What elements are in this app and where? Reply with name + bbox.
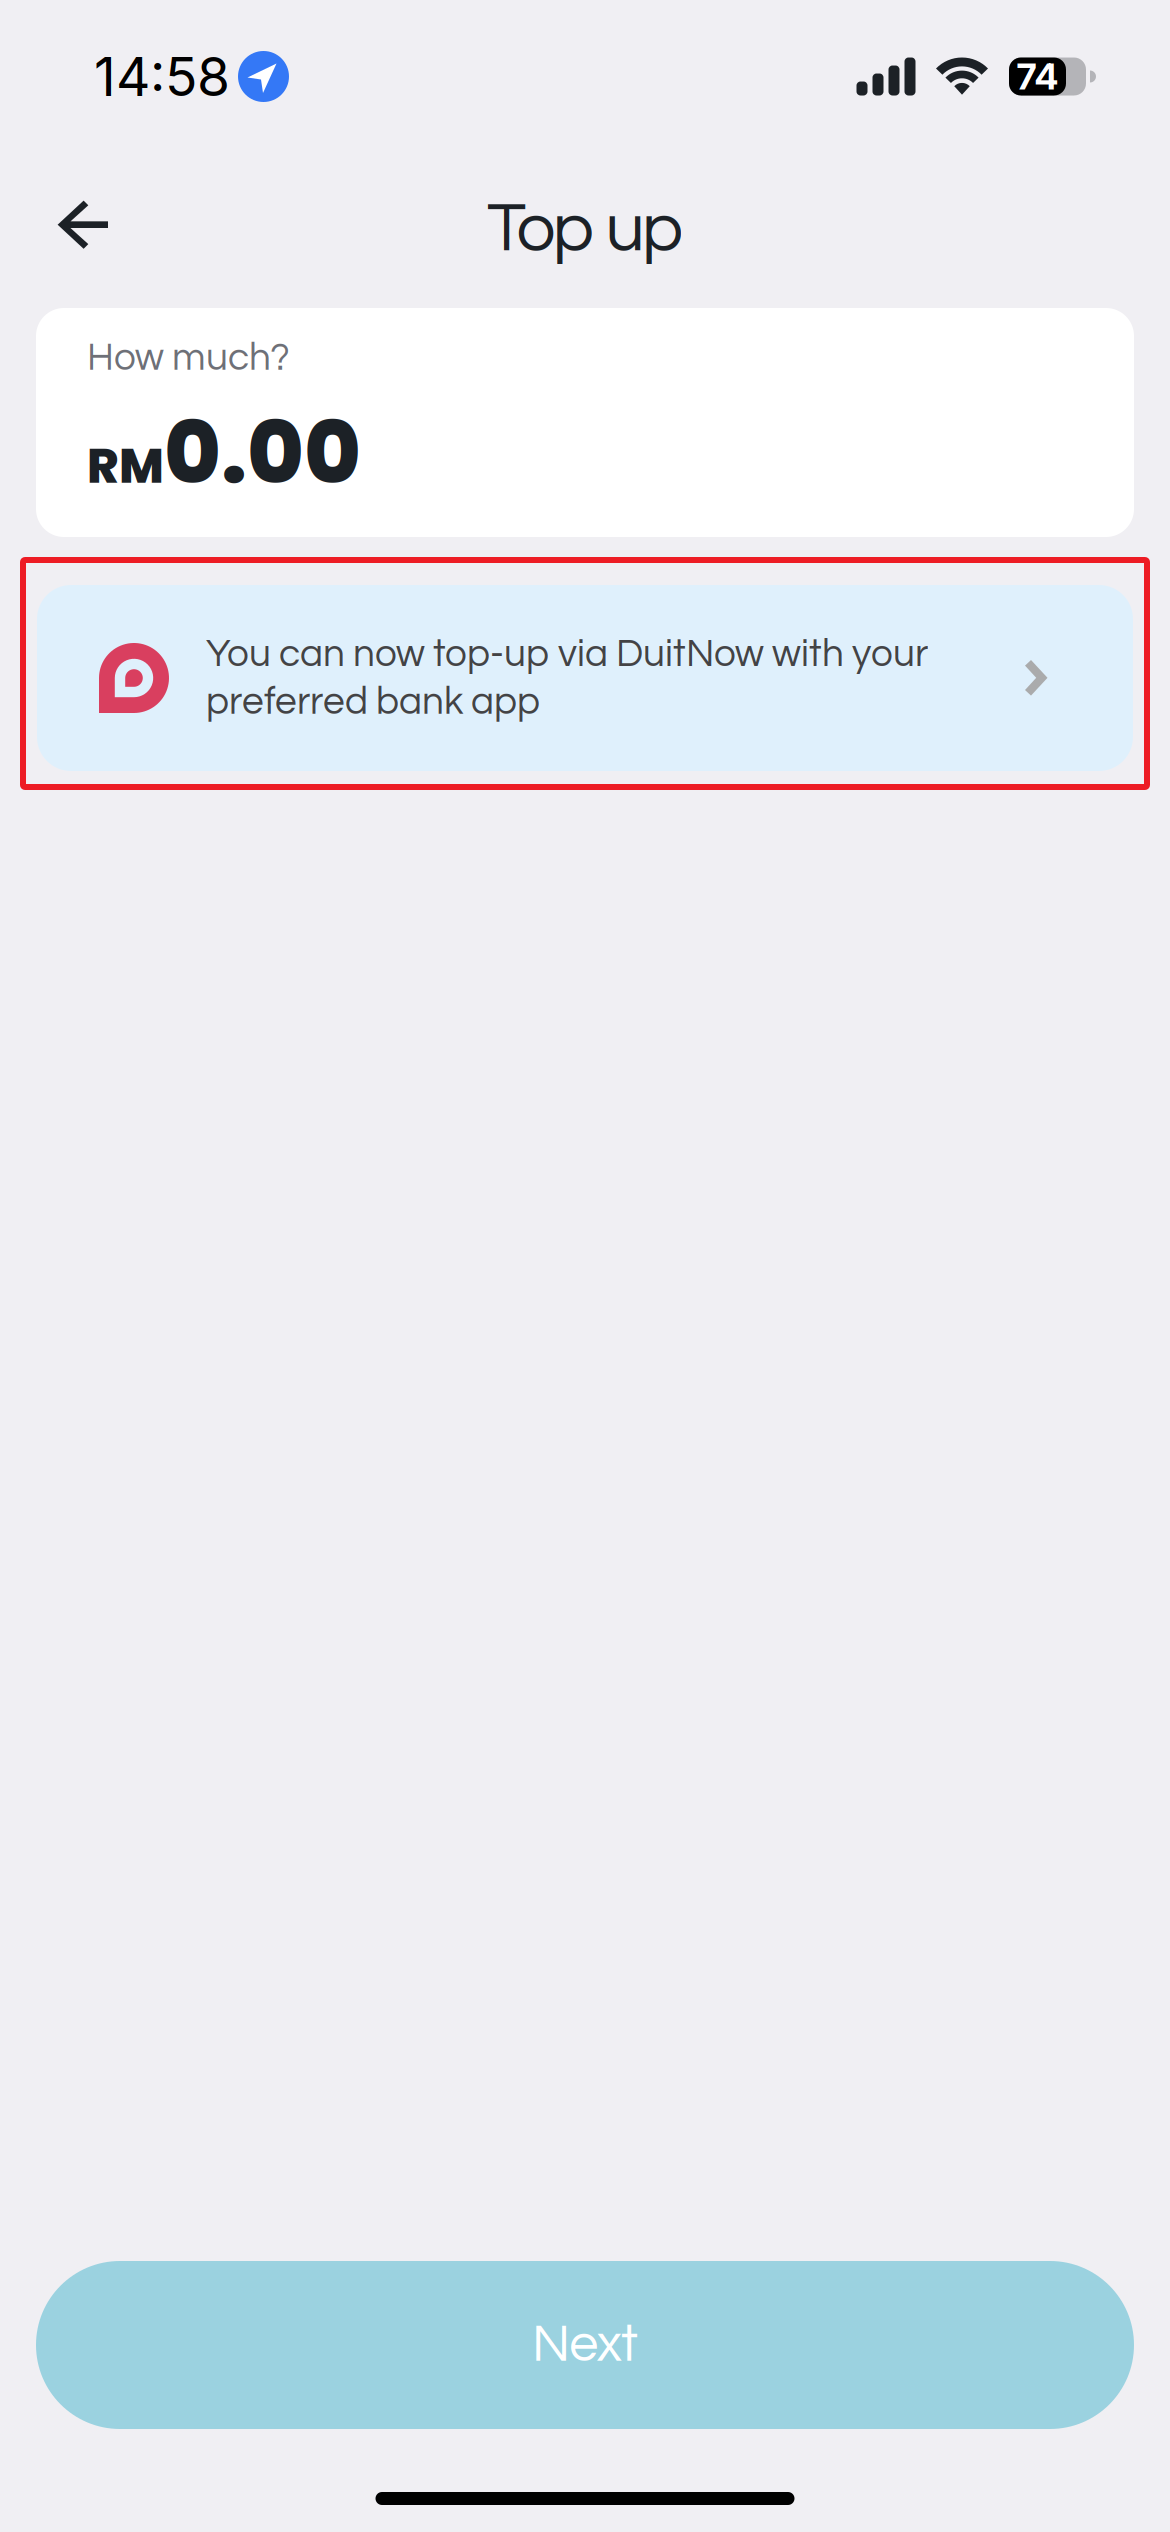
staticText: RM bbox=[87, 432, 164, 499]
button[interactable]: Next bbox=[36, 2261, 1134, 2429]
staticText: Next bbox=[532, 2318, 638, 2372]
button[interactable]: Back bbox=[36, 188, 132, 270]
staticText: Top up bbox=[487, 193, 683, 265]
staticText: How much? bbox=[87, 338, 290, 378]
staticText: 74 bbox=[1016, 55, 1058, 98]
staticText: 0.00 bbox=[164, 392, 361, 513]
button[interactable]: You can now top-up via DuitNow with your… bbox=[37, 585, 1133, 771]
staticText: You can now top-up via DuitNow with your… bbox=[206, 634, 928, 722]
staticText: 14:58 bbox=[94, 44, 230, 109]
